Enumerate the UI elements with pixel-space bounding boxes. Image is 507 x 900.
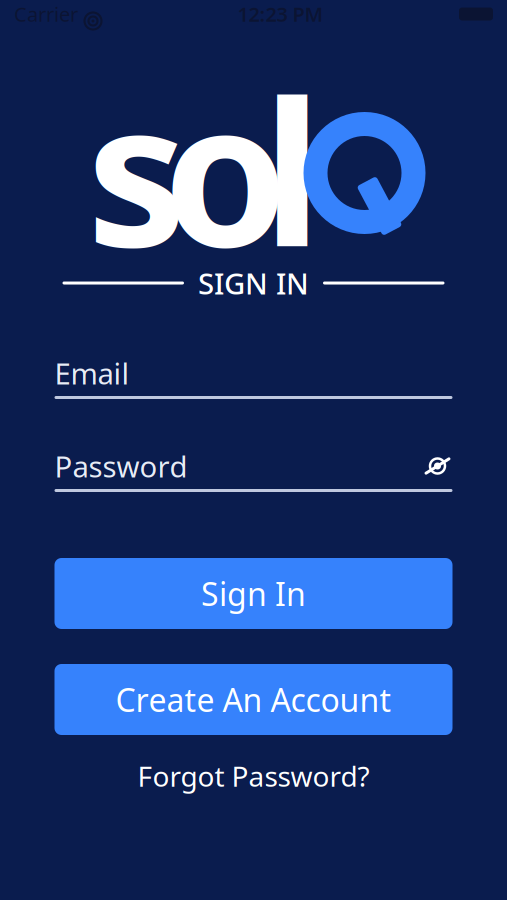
button[interactable]: Forgot Password? [54, 759, 452, 793]
staticText: Password [54, 446, 187, 485]
staticText: Carrier [14, 1, 78, 27]
staticText: SIGN IN [198, 263, 309, 302]
staticText: Email [54, 353, 129, 392]
staticText: Sign In [201, 572, 306, 615]
staticText: Forgot Password? [137, 757, 369, 795]
button[interactable]: Show password [422, 453, 452, 479]
staticText: o [163, 36, 288, 302]
staticText: s [86, 36, 186, 302]
button[interactable]: Sign In [54, 558, 452, 629]
staticText: Create An Account [115, 678, 391, 721]
button[interactable]: Create An Account [54, 664, 452, 735]
staticText: l [262, 36, 322, 302]
staticText: 12:23 PM [237, 1, 323, 27]
